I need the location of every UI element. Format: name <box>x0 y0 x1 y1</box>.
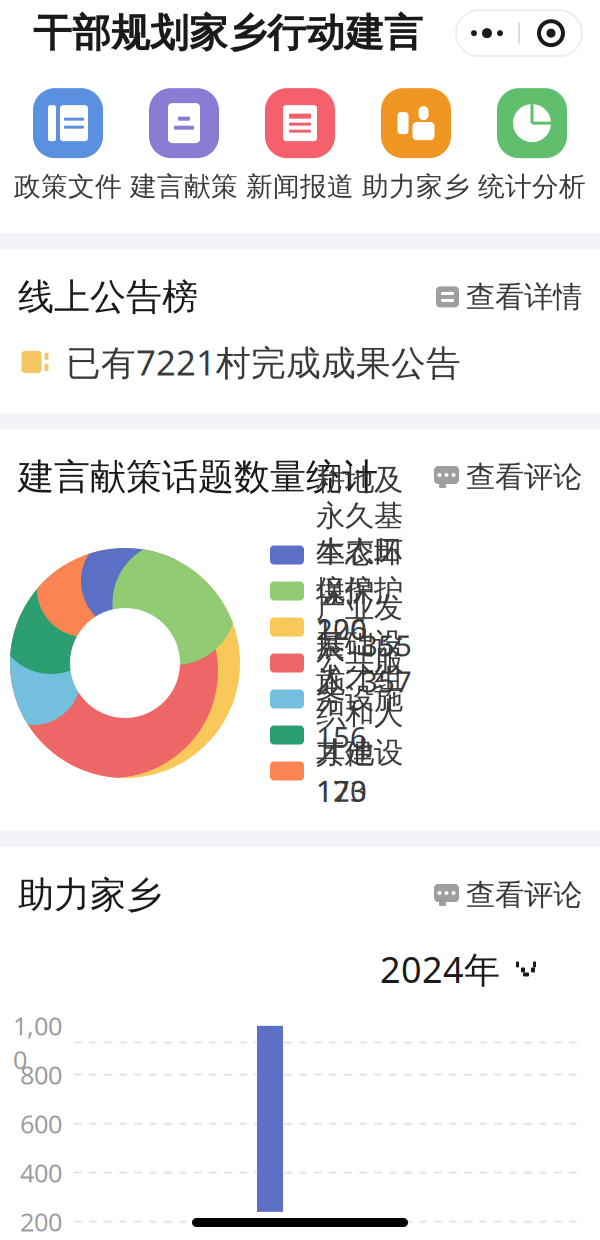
button[interactable]: 新闻报道 <box>242 88 358 203</box>
staticText: 查看评论 <box>466 877 582 913</box>
staticText: 400 <box>20 1156 62 1189</box>
staticText: 耕地及永久基本农田保护 126 <box>316 462 403 648</box>
staticText: 800 <box>20 1058 62 1091</box>
staticText: 政策文件 <box>14 170 122 203</box>
staticText: 统计分析 <box>478 170 586 203</box>
button[interactable]: 查看评论 <box>434 871 582 919</box>
button[interactable]: Close mini program <box>520 10 582 56</box>
staticText: 查看评论 <box>466 459 582 495</box>
button[interactable]: 助力家乡 <box>358 88 474 203</box>
staticText: 线上公告榜 <box>18 275 198 319</box>
staticText: 1,000 <box>13 1009 62 1076</box>
staticText: 产业发展 355 <box>316 589 412 664</box>
staticText: 建言献策话题数量统计 <box>18 455 378 499</box>
button[interactable]: 统计分析 <box>474 88 590 203</box>
staticText: 干部规划家乡行动建言 <box>33 9 423 57</box>
staticText: 200 <box>20 1205 62 1238</box>
button[interactable]: 查看评论 <box>434 453 582 501</box>
staticText: 已有7221村完成成果公告 <box>66 339 461 385</box>
button[interactable]: 查看详情 <box>436 273 582 321</box>
staticText: 600 <box>20 1107 62 1140</box>
staticText: 公共服务设施 156 <box>316 642 411 756</box>
staticText: 助力家乡 <box>18 873 162 917</box>
staticText: 人才组织和人才建设 173 <box>316 660 411 810</box>
staticText: 基础设施 357 <box>316 625 412 700</box>
staticText: 查看详情 <box>466 279 582 315</box>
staticText: 建言献策 <box>130 170 238 203</box>
button[interactable]: 2024年 <box>380 939 538 999</box>
button[interactable]: 政策文件 <box>10 88 126 203</box>
staticText: 其他 120 <box>316 732 382 810</box>
staticText: 生态坏境保护 200 <box>316 534 411 648</box>
staticText: 助力家乡 <box>362 170 470 203</box>
staticText: 新闻报道 <box>246 170 354 203</box>
button[interactable]: More options <box>456 10 518 56</box>
button[interactable]: 建言献策 <box>126 88 242 203</box>
staticText: 2024年 <box>380 945 500 993</box>
